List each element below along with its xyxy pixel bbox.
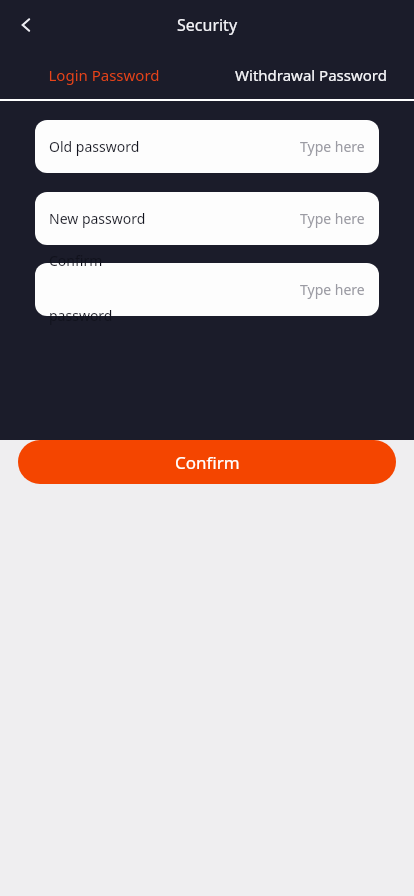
staticText: Old password	[49, 137, 140, 156]
staticText: New password	[49, 209, 146, 228]
staticText: Security	[177, 14, 238, 36]
staticText: Type here	[300, 209, 365, 228]
button[interactable]: New password	[35, 192, 379, 245]
staticText: password	[49, 306, 113, 325]
button[interactable]: Old password	[35, 120, 379, 173]
button[interactable]: Login Password	[0, 49, 207, 100]
staticText: Login Password	[48, 65, 160, 85]
button[interactable]: Back	[10, 8, 44, 42]
staticText: Type here	[300, 137, 365, 156]
staticText: Confirm	[49, 251, 103, 270]
button[interactable]: Confirm	[18, 440, 396, 484]
staticText: Withdrawal Password	[235, 65, 387, 85]
button[interactable]	[35, 263, 379, 316]
staticText: Confirm	[175, 451, 240, 474]
staticText: Type here	[300, 280, 365, 299]
button[interactable]: Withdrawal Password	[207, 49, 414, 100]
